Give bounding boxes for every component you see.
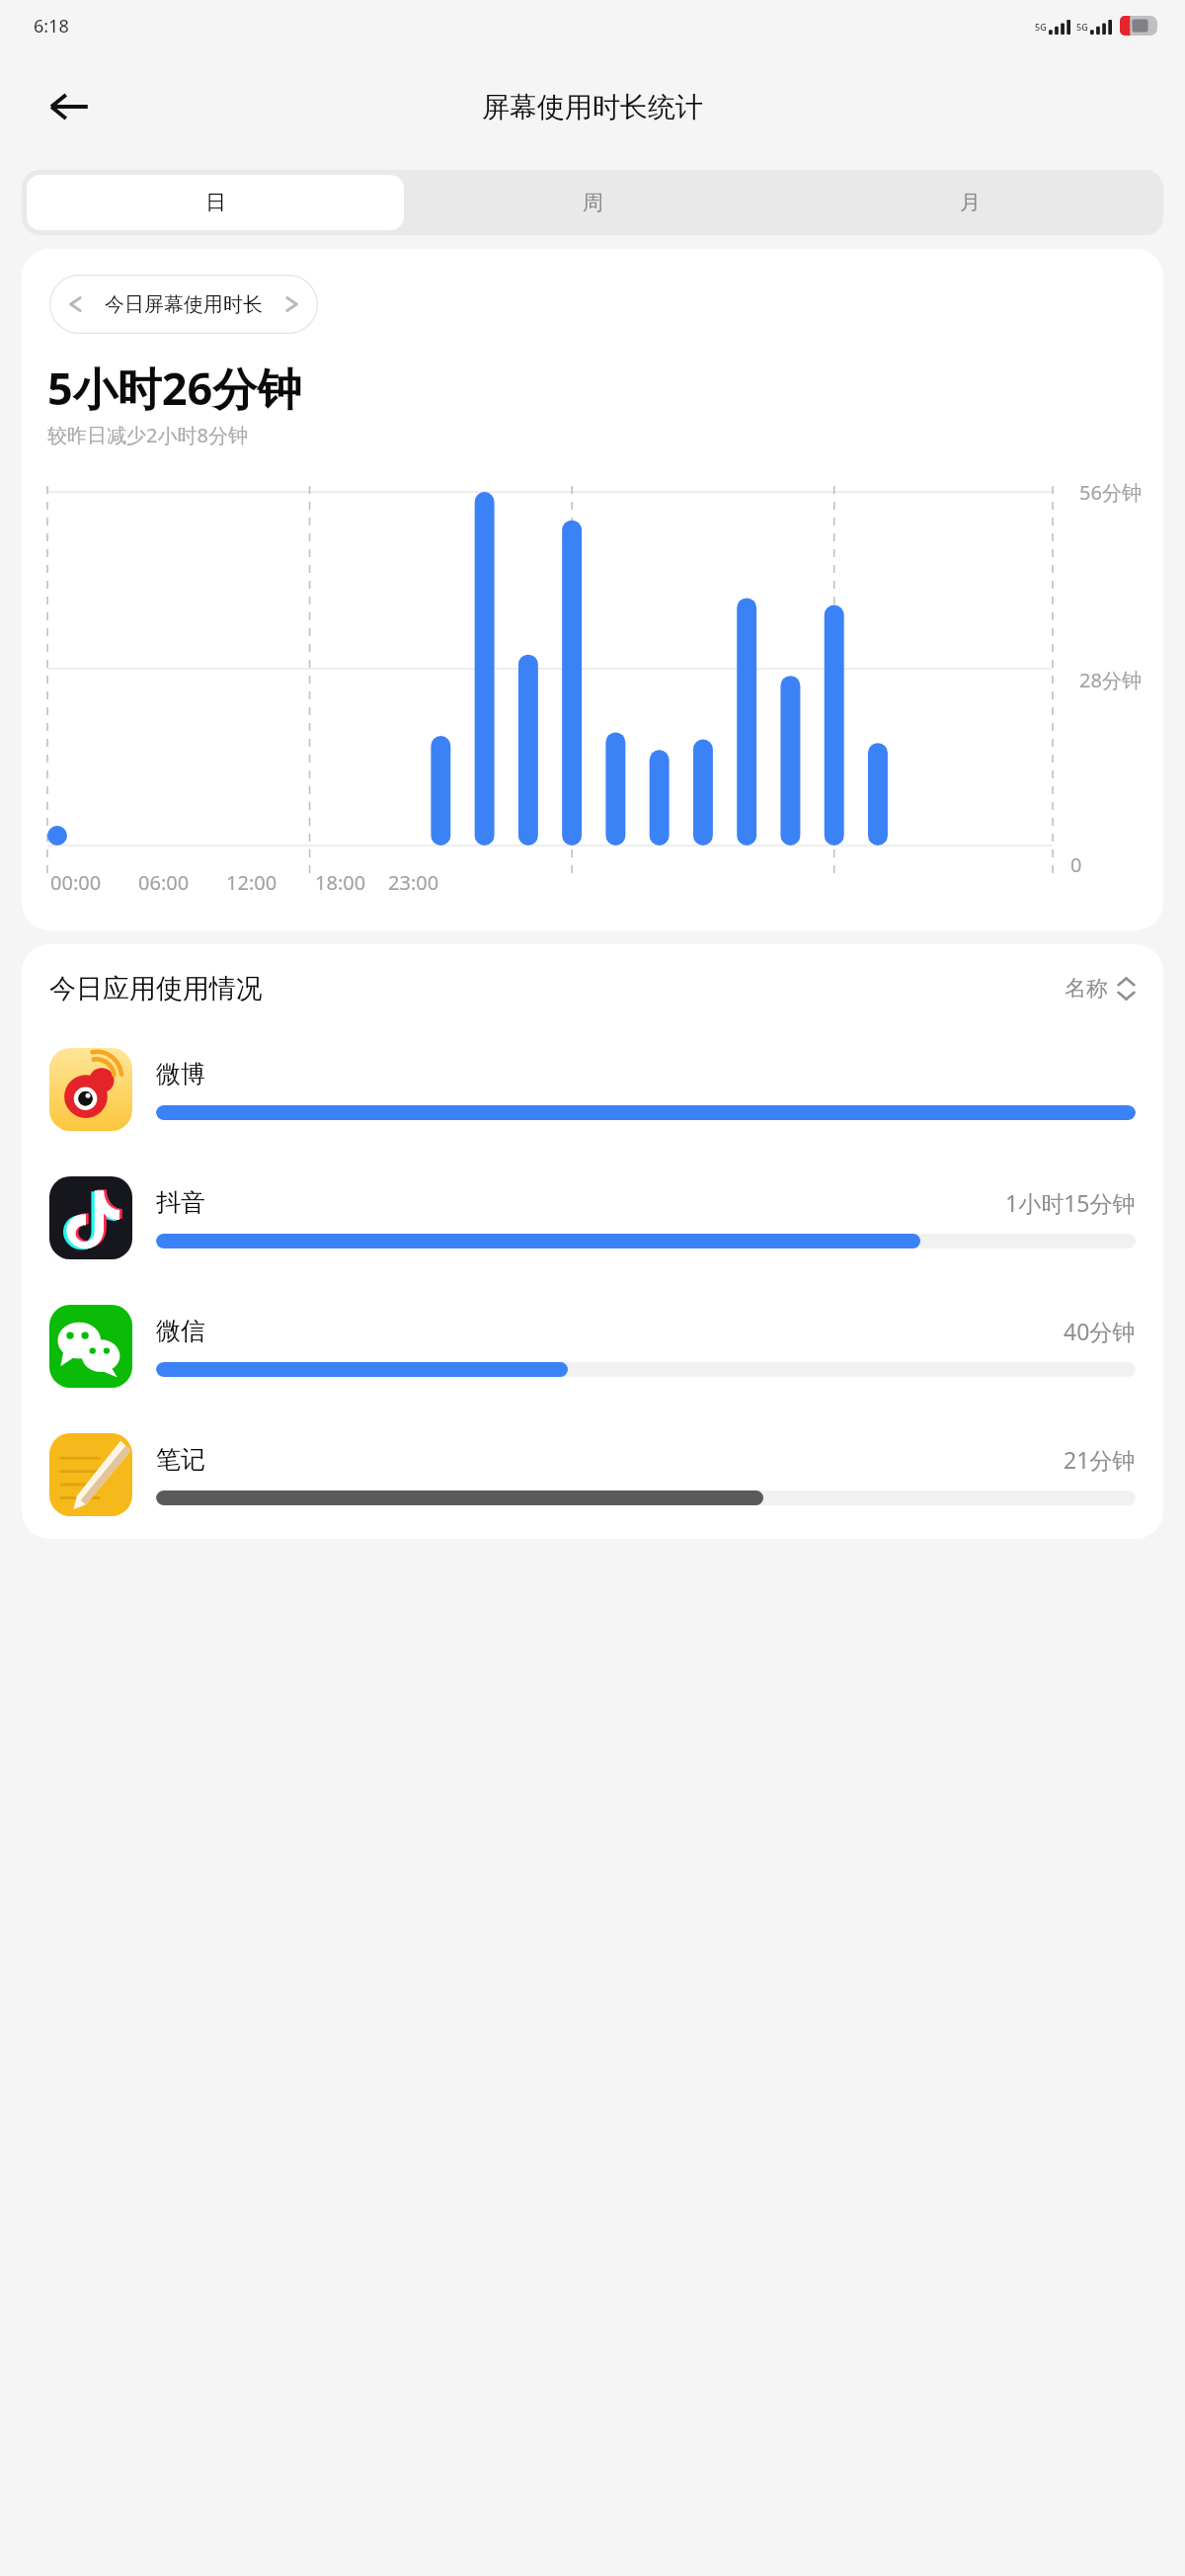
staticText: 23:00 (388, 869, 439, 896)
staticText: 6:18 (34, 14, 69, 39)
staticText: 日 (205, 190, 226, 215)
staticText: 今日屏幕使用时长 (105, 292, 263, 317)
staticText: 21分钟 (1064, 1444, 1136, 1475)
staticText: 1小时15分钟 (1005, 1187, 1136, 1218)
staticText: 12:00 (226, 869, 277, 896)
staticText: 名称 (1065, 975, 1108, 1003)
button[interactable]: 微博 (22, 1025, 1163, 1154)
button[interactable]: 今日屏幕使用时长 (49, 275, 318, 334)
staticText: 月 (960, 190, 981, 215)
button[interactable]: Back (41, 79, 97, 134)
staticText: 5G (1076, 21, 1088, 33)
staticText: 笔记 (156, 1444, 205, 1475)
staticText: 28分钟 (1079, 667, 1142, 693)
staticText: 抖音 (156, 1187, 205, 1218)
button[interactable]: 微信 (22, 1282, 1163, 1410)
staticText: 06:00 (138, 869, 190, 896)
button[interactable]: 名称 (1065, 973, 1136, 1005)
staticText: 00:00 (50, 869, 102, 896)
button[interactable]: 周 (404, 175, 781, 230)
staticText: 5小时26分钟 (47, 358, 302, 418)
staticText: 周 (583, 190, 603, 215)
staticText: 今日应用使用情况 (49, 972, 263, 1006)
button[interactable]: 抖音 (22, 1154, 1163, 1282)
staticText: 微博 (156, 1059, 205, 1089)
button[interactable]: 月 (781, 175, 1158, 230)
button[interactable]: 笔记 (22, 1410, 1163, 1539)
staticText: 较昨日减少2小时8分钟 (47, 422, 248, 448)
staticText: 屏幕使用时长统计 (482, 90, 703, 124)
staticText: 18:00 (315, 869, 366, 896)
staticText: 微信 (156, 1316, 205, 1346)
staticText: 40分钟 (1064, 1316, 1136, 1346)
staticText: 0 (1070, 851, 1082, 878)
staticText: 56分钟 (1079, 479, 1142, 506)
staticText: 5G (1035, 21, 1047, 33)
button[interactable]: 日 (27, 175, 404, 230)
